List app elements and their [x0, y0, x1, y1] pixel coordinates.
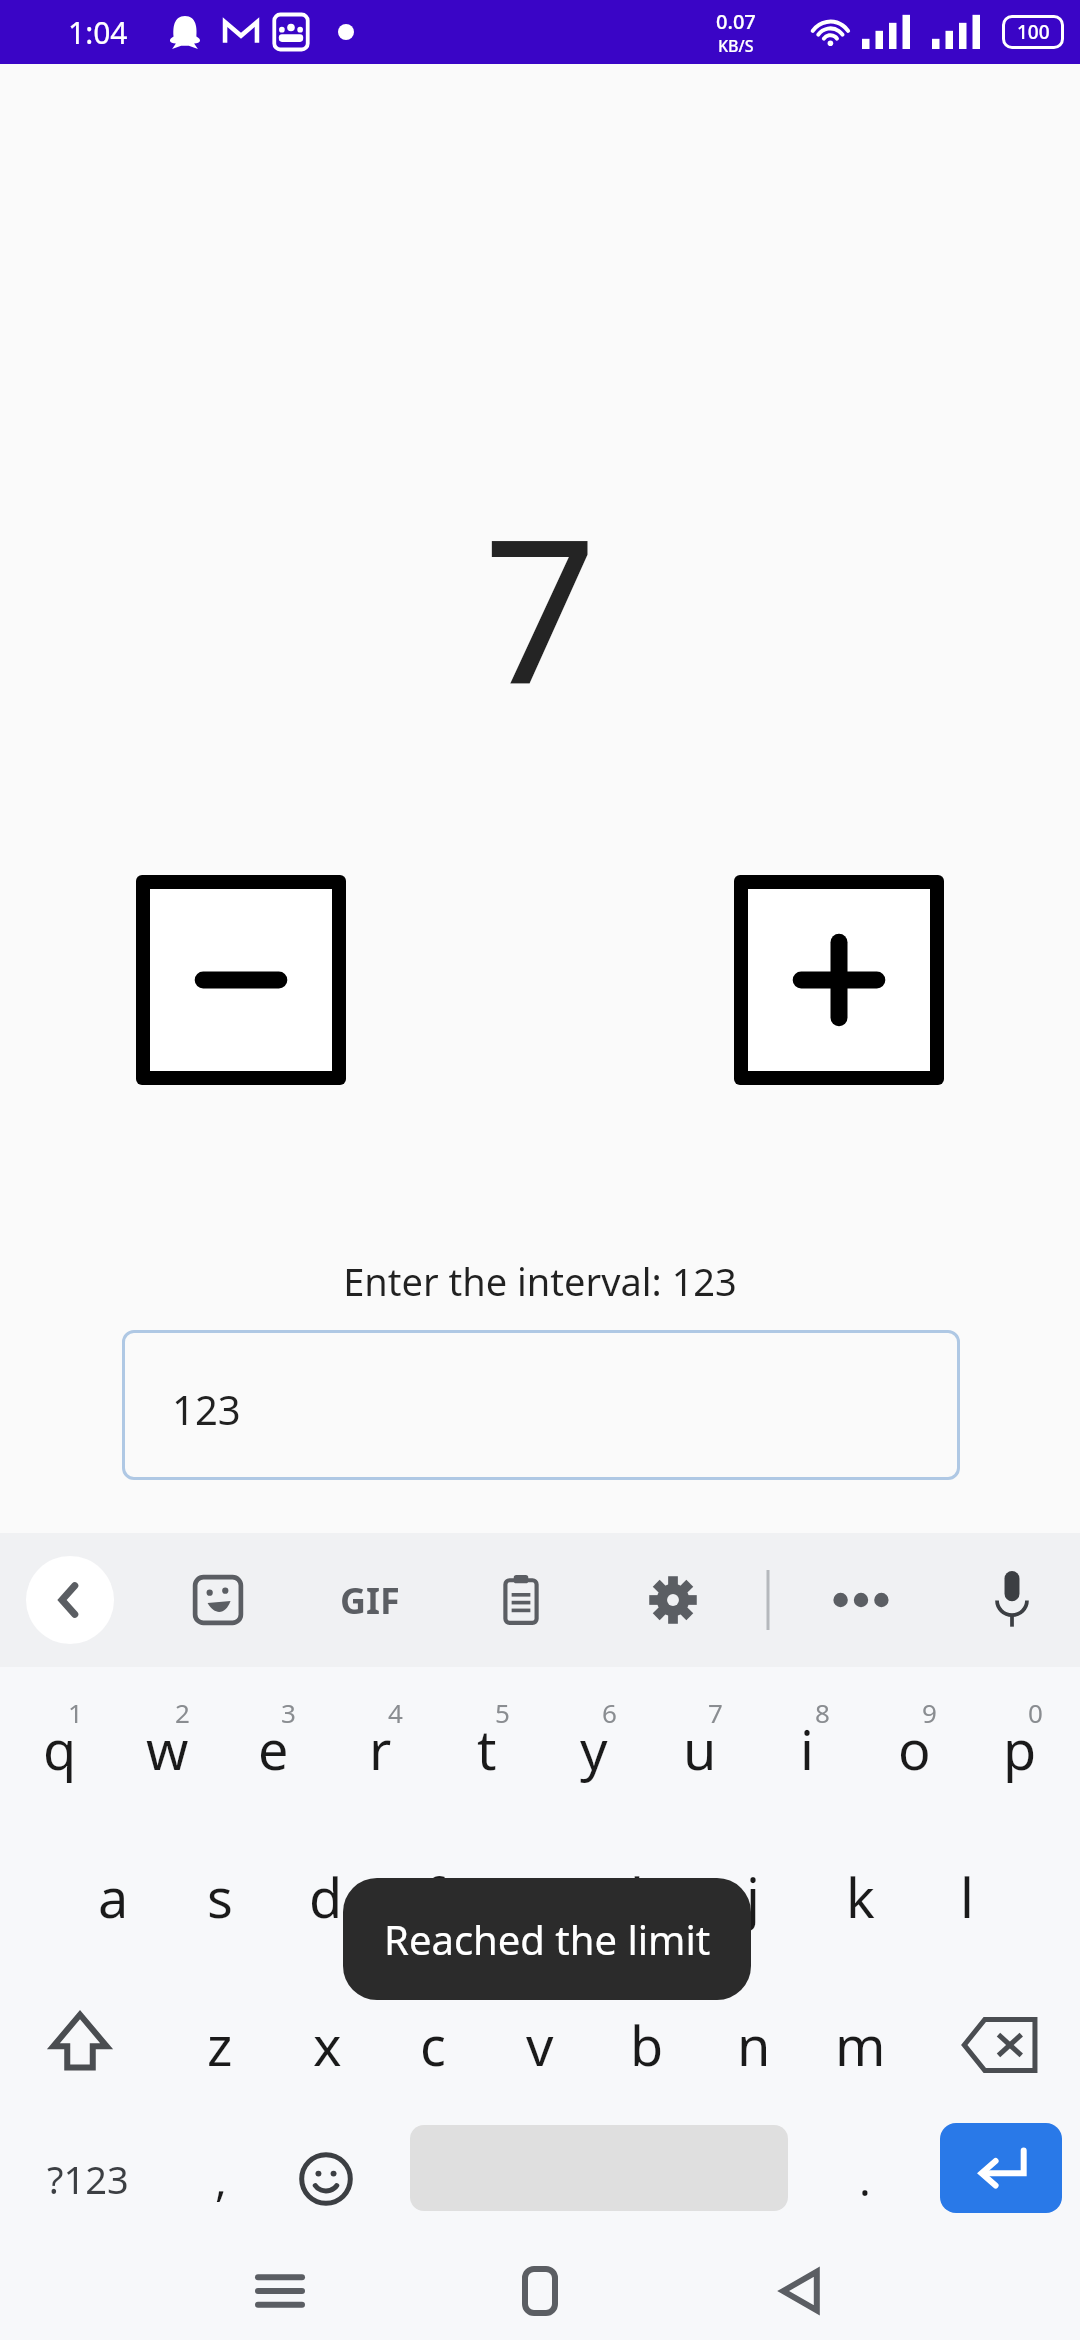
button[interactable]: u	[647, 1675, 753, 1823]
staticText: Reached the limit	[384, 1912, 711, 1966]
button[interactable]: Stickers	[175, 1573, 261, 1627]
staticText: 7	[483, 470, 598, 742]
staticText: s	[207, 1860, 233, 1934]
staticText: 4	[388, 1695, 403, 1730]
button[interactable]: More options	[818, 1573, 904, 1627]
button[interactable]: j	[700, 1823, 806, 1971]
staticText: 0.07	[716, 8, 756, 35]
button[interactable]: Emoji	[278, 2119, 374, 2239]
staticText: v	[526, 2008, 554, 2082]
staticText: r	[369, 1712, 392, 1786]
button[interactable]: Home	[492, 2256, 588, 2326]
button[interactable]: e	[220, 1675, 326, 1823]
button[interactable]: i	[754, 1675, 860, 1823]
staticText: d	[309, 1860, 343, 1934]
button[interactable]: Enter	[940, 2123, 1062, 2213]
staticText: o	[898, 1712, 931, 1786]
button[interactable]: c	[380, 1971, 486, 2119]
button[interactable]: Shift	[10, 1971, 150, 2119]
button[interactable]: y	[541, 1675, 647, 1823]
button[interactable]: b	[594, 1971, 700, 2119]
staticText: q	[43, 1712, 77, 1786]
button[interactable]: r	[327, 1675, 433, 1823]
button[interactable]: Increase	[734, 875, 944, 1085]
button[interactable]: .	[820, 2119, 910, 2239]
button[interactable]: Voice input	[972, 1569, 1052, 1631]
staticText: GIF	[340, 1576, 400, 1625]
staticText: j	[746, 1860, 760, 1934]
staticText: h	[630, 1860, 664, 1934]
button[interactable]: x	[274, 1971, 380, 2119]
button[interactable]: Back	[752, 2256, 848, 2326]
button[interactable]: g	[487, 1823, 593, 1971]
button[interactable]: Recent apps	[232, 2256, 328, 2326]
button[interactable]: w	[114, 1675, 220, 1823]
button[interactable]: l	[914, 1823, 1020, 1971]
button[interactable]: p	[967, 1675, 1073, 1823]
staticText: Enter the interval: 123	[343, 1255, 737, 1307]
staticText: y	[580, 1712, 608, 1786]
button[interactable]: o	[861, 1675, 967, 1823]
button[interactable]: t	[434, 1675, 540, 1823]
staticText: c	[420, 2008, 446, 2082]
button[interactable]: 123	[122, 1330, 960, 1480]
staticText: w	[146, 1712, 189, 1786]
button[interactable]: f	[380, 1823, 486, 1971]
staticText: 8	[815, 1695, 830, 1730]
staticText: i	[800, 1712, 814, 1786]
button[interactable]: q	[7, 1675, 113, 1823]
button[interactable]: a	[60, 1823, 166, 1971]
button[interactable]: k	[807, 1823, 913, 1971]
staticText: .	[859, 2149, 871, 2209]
staticText: a	[98, 1860, 129, 1934]
staticText: 2	[175, 1695, 190, 1730]
staticText: l	[960, 1860, 974, 1934]
staticText: g	[523, 1860, 557, 1934]
button[interactable]: z	[167, 1971, 273, 2119]
staticText: k	[846, 1860, 875, 1934]
staticText: x	[313, 2008, 342, 2082]
staticText: 100	[1017, 19, 1050, 45]
staticText: 9	[922, 1695, 937, 1730]
staticText: KB/S	[718, 35, 754, 57]
button[interactable]: ?123	[14, 2119, 162, 2239]
staticText: ?123	[47, 2153, 129, 2205]
button[interactable]: v	[487, 1971, 593, 2119]
staticText: f	[424, 1860, 443, 1934]
staticText: 5	[495, 1695, 510, 1730]
button[interactable]: Backspace	[930, 1971, 1070, 2119]
button[interactable]: n	[701, 1971, 807, 2119]
staticText: t	[477, 1712, 497, 1786]
button[interactable]: Back	[26, 1556, 114, 1644]
staticText: b	[630, 2008, 664, 2082]
staticText: p	[1003, 1712, 1037, 1786]
staticText: 1	[68, 1695, 83, 1730]
button[interactable]: Clipboard	[478, 1573, 564, 1627]
staticText: 3	[281, 1695, 296, 1730]
staticText: 6	[602, 1695, 617, 1730]
staticText: 1:04	[68, 12, 128, 53]
staticText: 7	[708, 1695, 723, 1730]
button[interactable]: d	[273, 1823, 379, 1971]
staticText: m	[835, 2008, 886, 2082]
button[interactable]: h	[594, 1823, 700, 1971]
staticText: 123	[172, 1382, 241, 1436]
staticText: n	[737, 2008, 771, 2082]
button[interactable]: Settings	[630, 1573, 716, 1627]
staticText: z	[207, 2008, 233, 2082]
button[interactable]: ,	[176, 2119, 266, 2239]
button[interactable]: s	[167, 1823, 273, 1971]
staticText: ,	[215, 2149, 227, 2209]
button[interactable]: Decrease	[136, 875, 346, 1085]
staticText: 0	[1028, 1695, 1043, 1730]
staticText: e	[258, 1712, 289, 1786]
staticText: u	[683, 1712, 717, 1786]
button[interactable]: GIF	[320, 1573, 420, 1627]
button[interactable]: m	[807, 1971, 913, 2119]
